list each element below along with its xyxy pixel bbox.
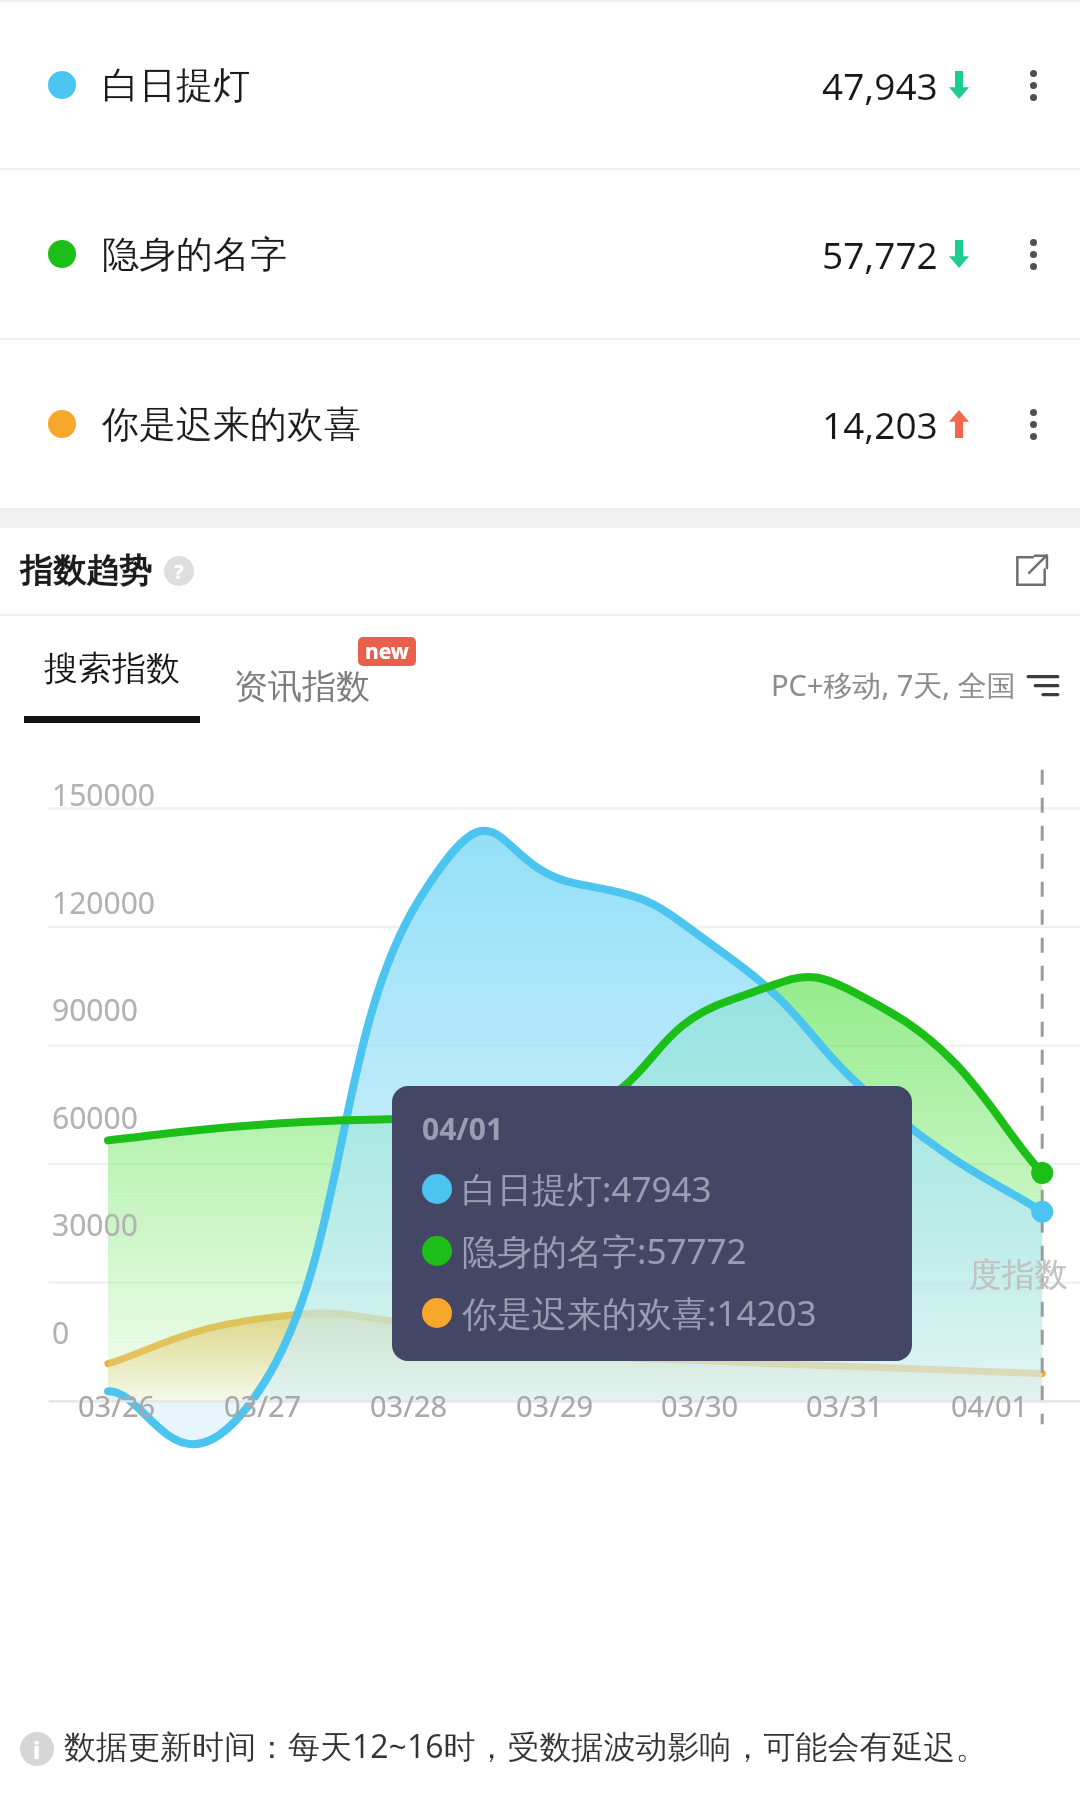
staticText: 03/29 [516, 1386, 594, 1425]
staticText: 你是迟来的欢喜 [102, 401, 361, 448]
button[interactable]: PC+移动, 7天, 全国 [771, 665, 1060, 705]
button[interactable]: 白日提灯 [0, 2, 1080, 170]
button[interactable]: 你是迟来的欢喜 [0, 340, 1080, 510]
staticText: 指数趋势 [20, 550, 152, 592]
staticText: 03/28 [370, 1386, 448, 1425]
button[interactable]: Open trend in new page [1002, 542, 1060, 600]
staticText: ? [174, 558, 184, 585]
button[interactable]: More options for 你是迟来的欢喜 [1004, 395, 1062, 453]
button[interactable]: 搜索指数 [20, 647, 204, 723]
staticText: new [365, 637, 409, 666]
staticText: 90000 [52, 989, 138, 1030]
staticText: 隐身的名字:57772 [462, 1227, 747, 1275]
button[interactable]: 资讯指数 [234, 663, 376, 708]
staticText: 03/31 [806, 1386, 884, 1425]
staticText: 04/01 [422, 1108, 504, 1149]
staticText: 你是迟来的欢喜:14203 [462, 1289, 817, 1337]
staticText: 数据更新时间：每天12~16时，受数据波动影响，可能会有延迟。 [64, 1724, 988, 1768]
button[interactable]: 指数趋势 [0, 528, 1080, 614]
staticText: i [33, 1733, 41, 1766]
staticText: 0 [52, 1312, 70, 1353]
button[interactable]: 04/01 [392, 1086, 912, 1361]
staticText: 资讯指数 [234, 665, 370, 708]
staticText: 57,772 [822, 229, 938, 279]
staticText: 白日提灯 [102, 62, 250, 109]
staticText: 04/01 [951, 1386, 1029, 1425]
staticText: 隐身的名字 [102, 231, 287, 278]
staticText: 30000 [52, 1204, 138, 1245]
staticText: 47,943 [822, 60, 938, 110]
staticText: 14,203 [822, 399, 938, 449]
staticText: 60000 [52, 1097, 138, 1138]
button[interactable]: More options for 隐身的名字 [1004, 225, 1062, 283]
button[interactable]: More options for 白日提灯 [1004, 56, 1062, 114]
staticText: 03/26 [78, 1386, 156, 1425]
staticText: 120000 [52, 882, 155, 923]
staticText: 03/30 [661, 1386, 739, 1425]
staticText: 白日提灯:47943 [462, 1165, 712, 1213]
button[interactable]: 隐身的名字 [0, 170, 1080, 340]
staticText: 150000 [52, 774, 155, 815]
staticText: 搜索指数 [44, 647, 180, 690]
staticText: PC+移动, 7天, 全国 [771, 665, 1016, 705]
staticText: 度指数 [969, 1254, 1068, 1296]
staticText: 03/27 [224, 1386, 302, 1425]
